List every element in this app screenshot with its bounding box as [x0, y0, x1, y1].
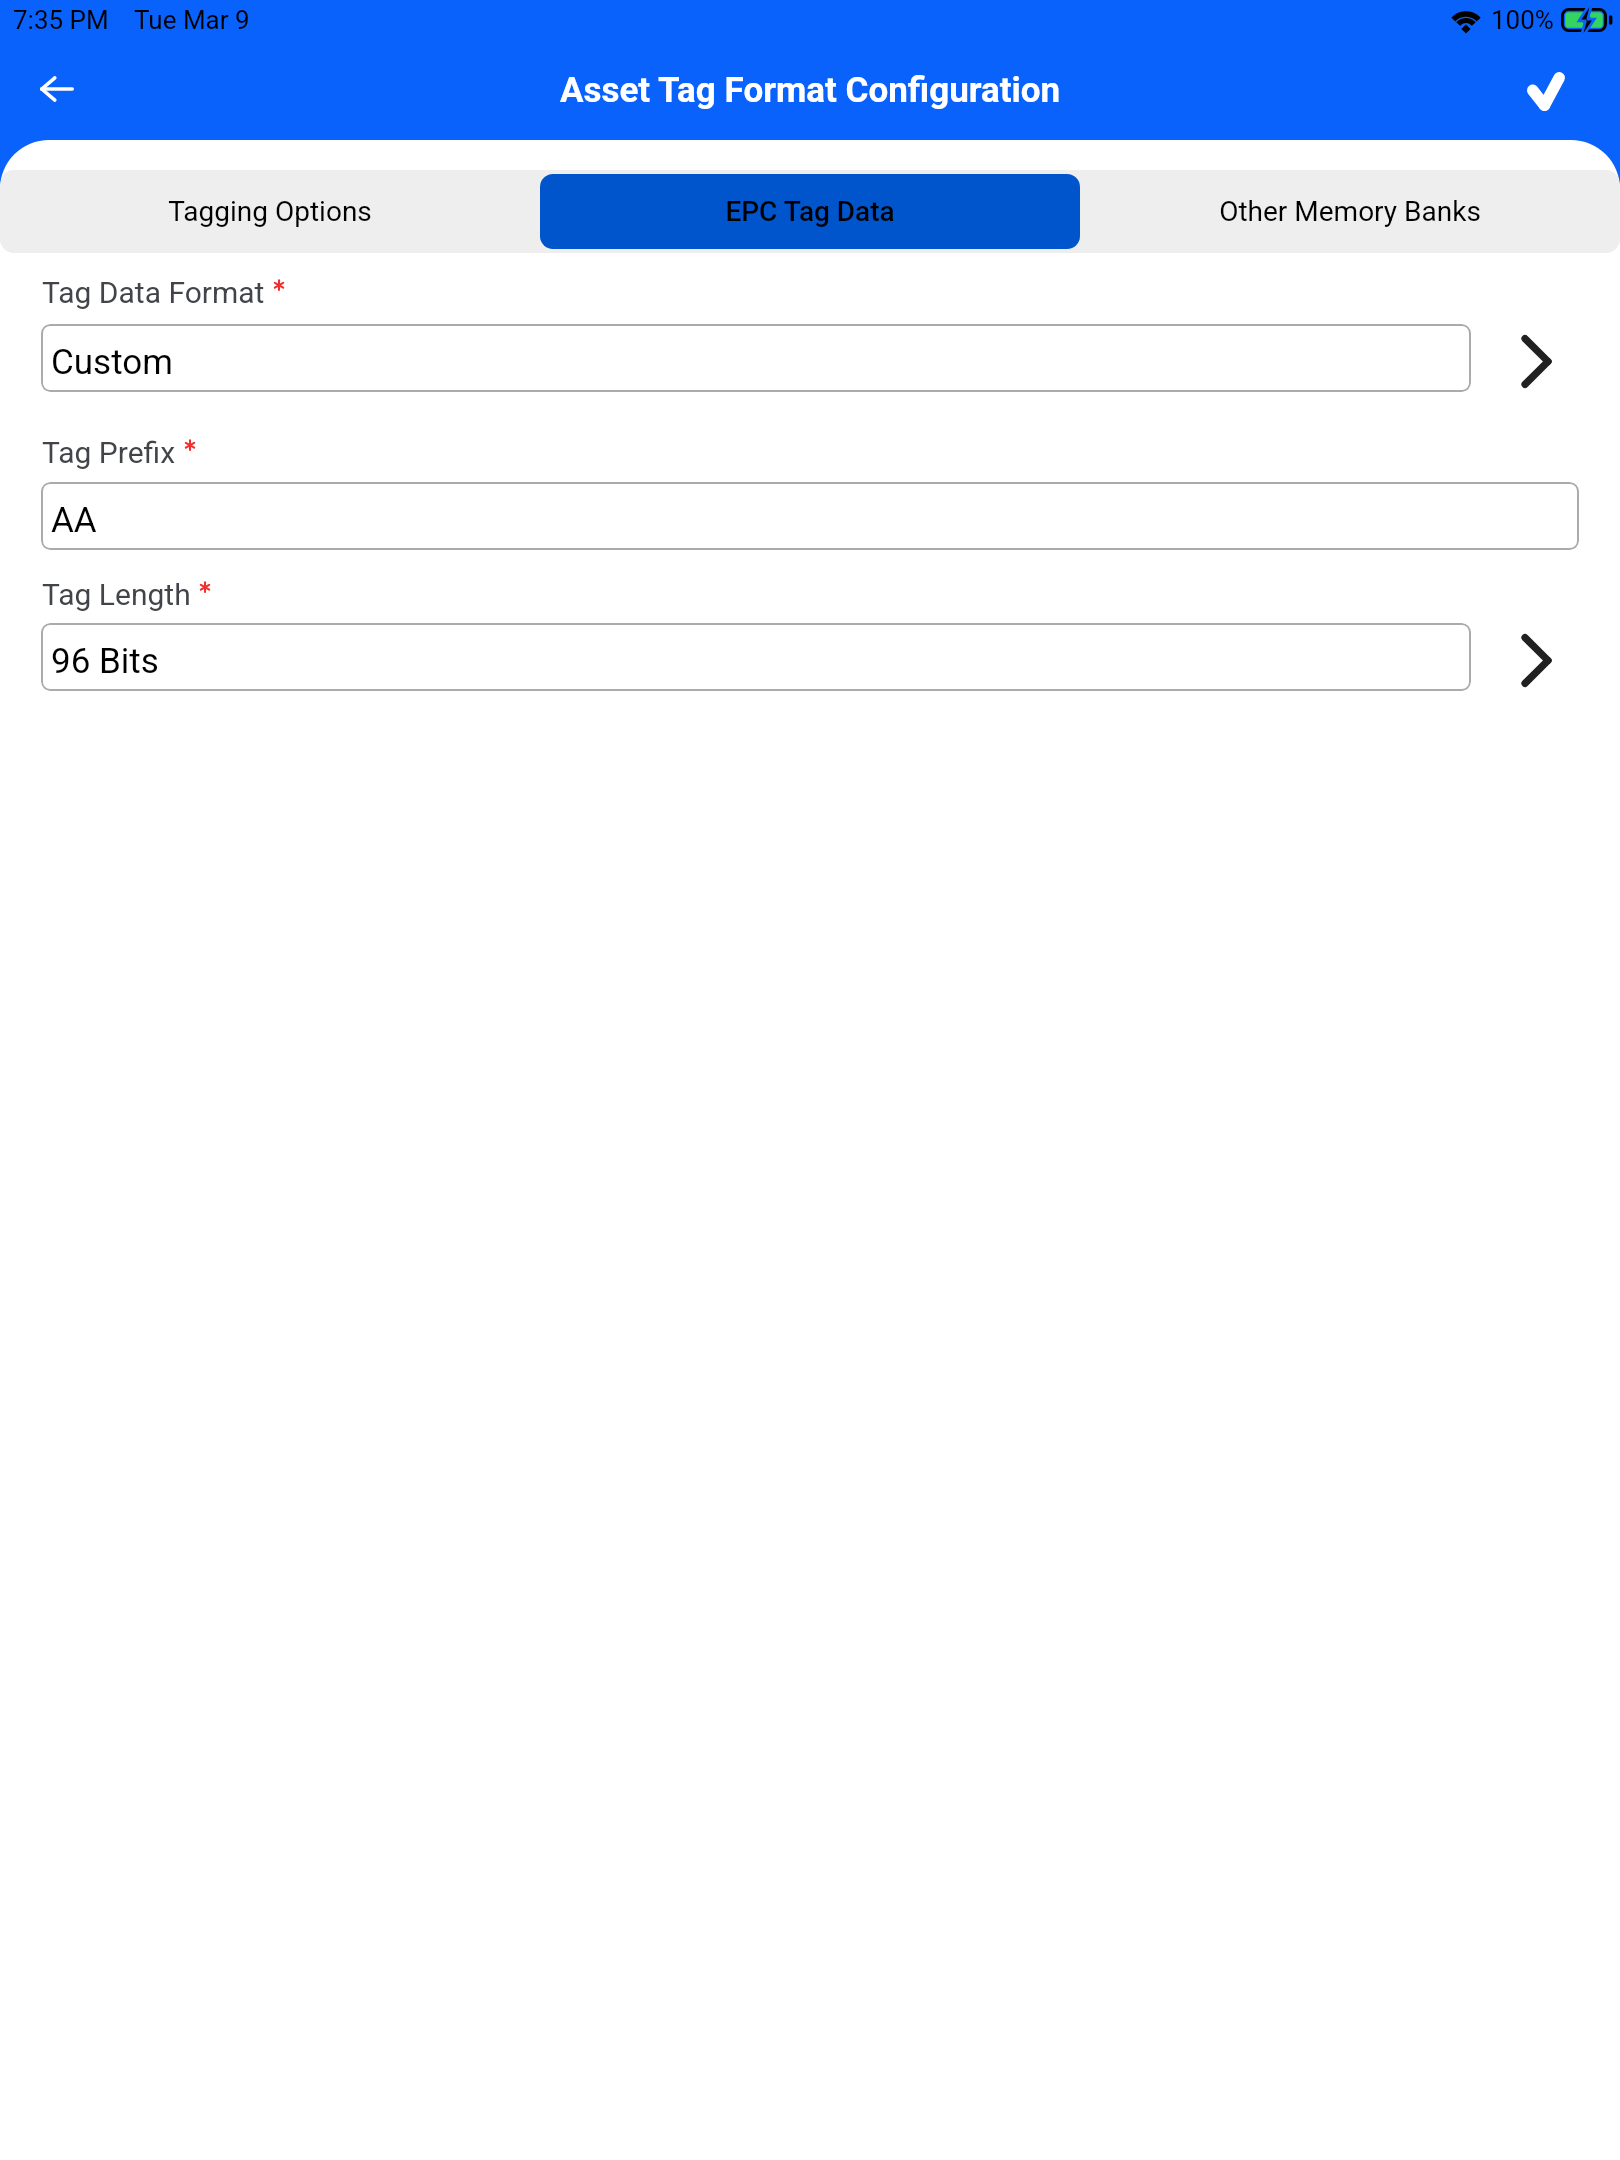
button[interactable]: Confirm [1510, 55, 1582, 127]
button[interactable]: Choose tag length [1471, 626, 1602, 694]
button[interactable]: EPC Tag Data [540, 174, 1080, 249]
button[interactable]: Tagging Options [0, 174, 540, 249]
staticText: EPC Tag Data [725, 195, 895, 228]
button[interactable]: Choose tag data format [1471, 327, 1602, 395]
button[interactable]: Custom [41, 324, 1471, 392]
staticText: Tag Data Format [42, 275, 265, 310]
staticText: Tag Length [42, 577, 191, 612]
staticText: 96 Bits [51, 641, 159, 682]
staticText: Custom [51, 342, 173, 383]
staticText: Tue Mar 9 [134, 5, 250, 35]
staticText: 7:35 PM [13, 5, 109, 35]
staticText: AA [51, 500, 97, 541]
staticText: Tag Prefix [42, 435, 176, 470]
staticText: 100% [1491, 5, 1554, 35]
staticText: Other Memory Banks [1219, 195, 1481, 228]
button[interactable]: 96 Bits [41, 623, 1471, 691]
button[interactable]: Back [21, 53, 93, 125]
button[interactable]: AA [41, 482, 1579, 550]
staticText: Tagging Options [168, 195, 372, 228]
staticText: Asset Tag Format Configuration [560, 70, 1061, 111]
button[interactable]: Other Memory Banks [1080, 174, 1620, 249]
